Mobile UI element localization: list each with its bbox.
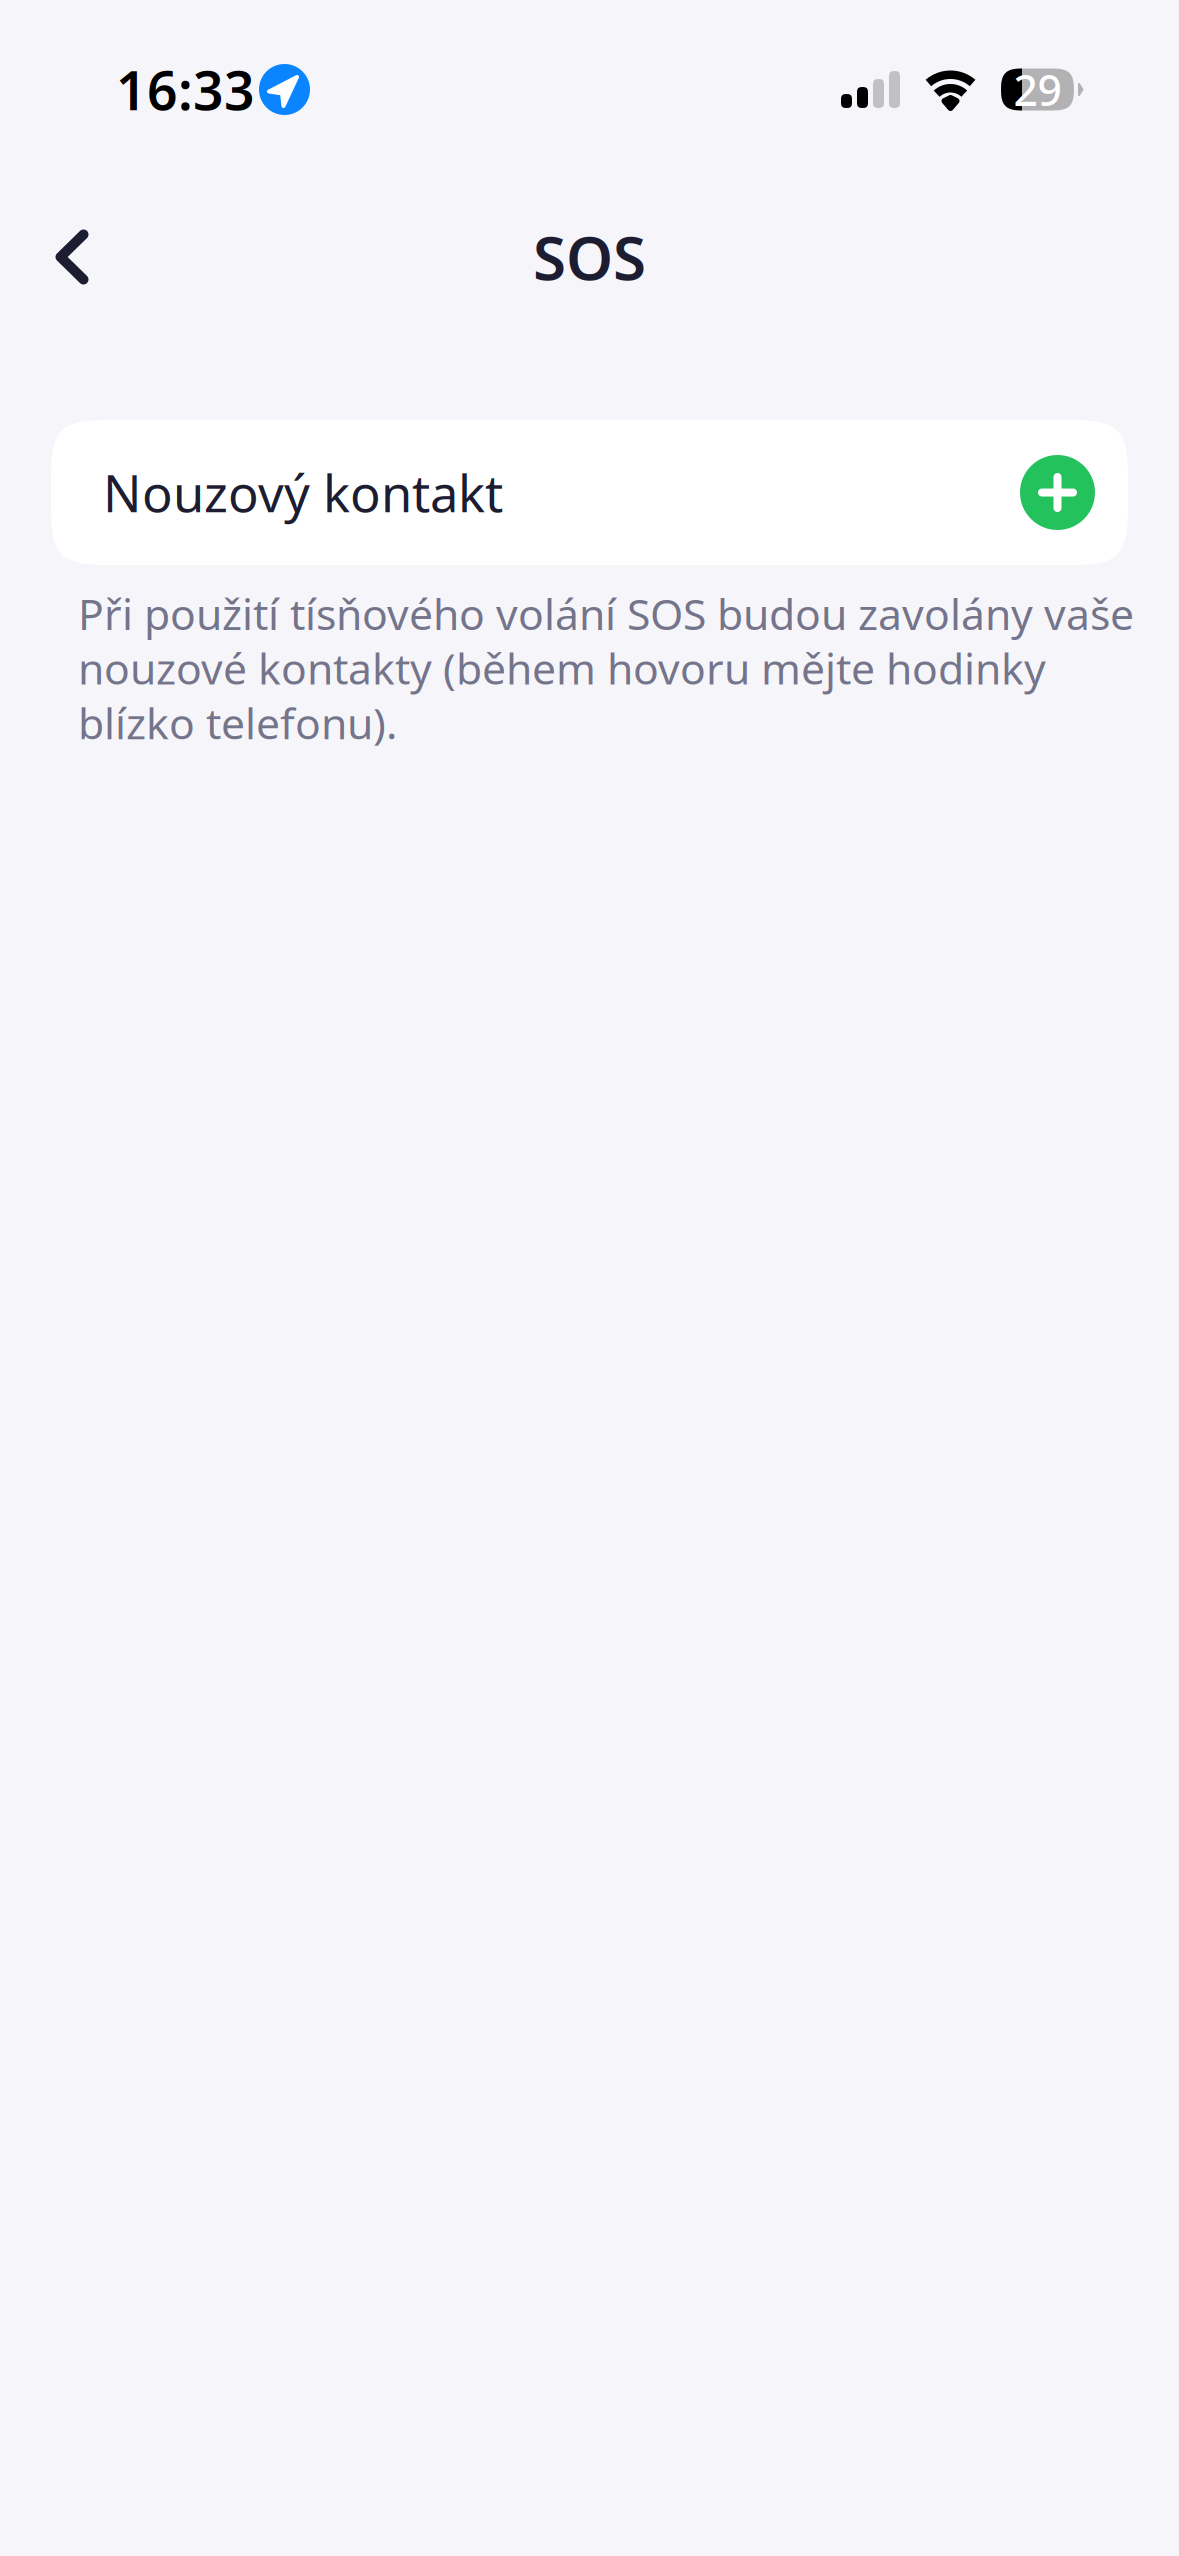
staticText: Nouzový kontakt (103, 459, 503, 526)
staticText: SOS (533, 217, 646, 297)
staticText: Při použití tísňového volání SOS budou z… (78, 585, 1134, 751)
button[interactable]: Back (24, 209, 120, 305)
button[interactable]: Nouzový kontakt (51, 420, 1128, 565)
staticText: 16:33 (116, 54, 255, 125)
staticText: 29 (1013, 61, 1061, 118)
